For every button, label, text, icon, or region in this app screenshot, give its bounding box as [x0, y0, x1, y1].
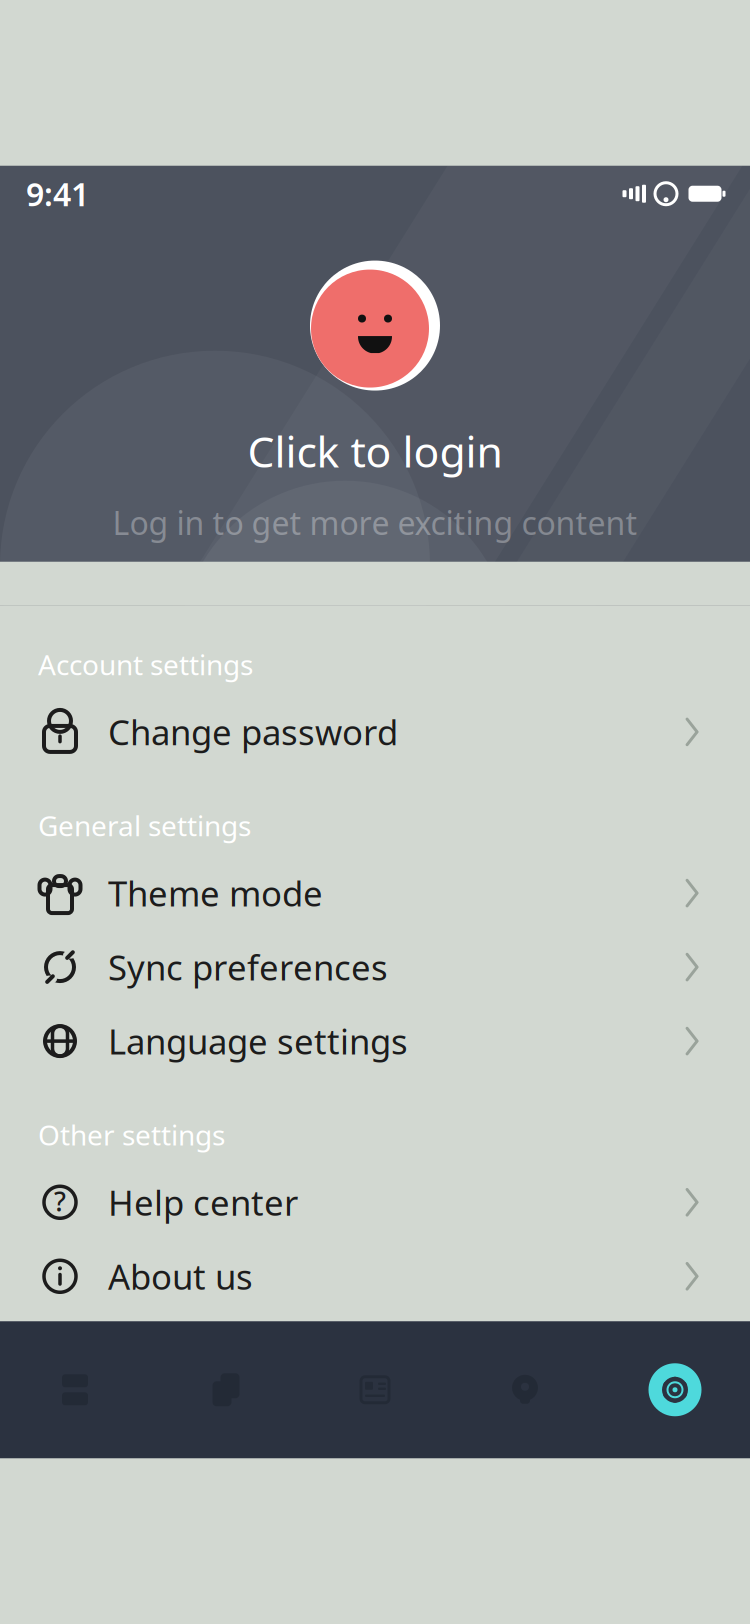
staticText: 9:41: [26, 172, 89, 215]
button[interactable]: Messages: [450, 1321, 600, 1458]
button[interactable]: Dashboard: [0, 1321, 150, 1458]
staticText: Click to login: [247, 423, 502, 479]
staticText: Help center: [108, 1179, 298, 1225]
staticText: General settings: [38, 807, 251, 844]
button[interactable]: News: [300, 1321, 450, 1458]
button[interactable]: Library: [150, 1321, 300, 1458]
staticText: Sync preferences: [108, 944, 388, 990]
staticText: ?: [54, 1184, 66, 1219]
staticText: Change password: [108, 709, 398, 755]
button[interactable]: Change password: [0, 695, 750, 769]
staticText: Account settings: [38, 646, 253, 683]
staticText: About us: [108, 1253, 253, 1299]
staticText: Language settings: [108, 1018, 408, 1064]
button[interactable]: Theme mode: [0, 856, 750, 930]
button[interactable]: ?: [0, 1165, 750, 1239]
button[interactable]: Click to login: [112, 261, 637, 544]
button[interactable]: Language settings: [0, 1004, 750, 1078]
button[interactable]: Settings: [600, 1321, 750, 1458]
staticText: Theme mode: [108, 870, 323, 916]
staticText: Log in to get more exciting content: [112, 501, 637, 544]
button[interactable]: Sync preferences: [0, 930, 750, 1004]
staticText: Other settings: [38, 1116, 225, 1153]
button[interactable]: About us: [0, 1239, 750, 1313]
